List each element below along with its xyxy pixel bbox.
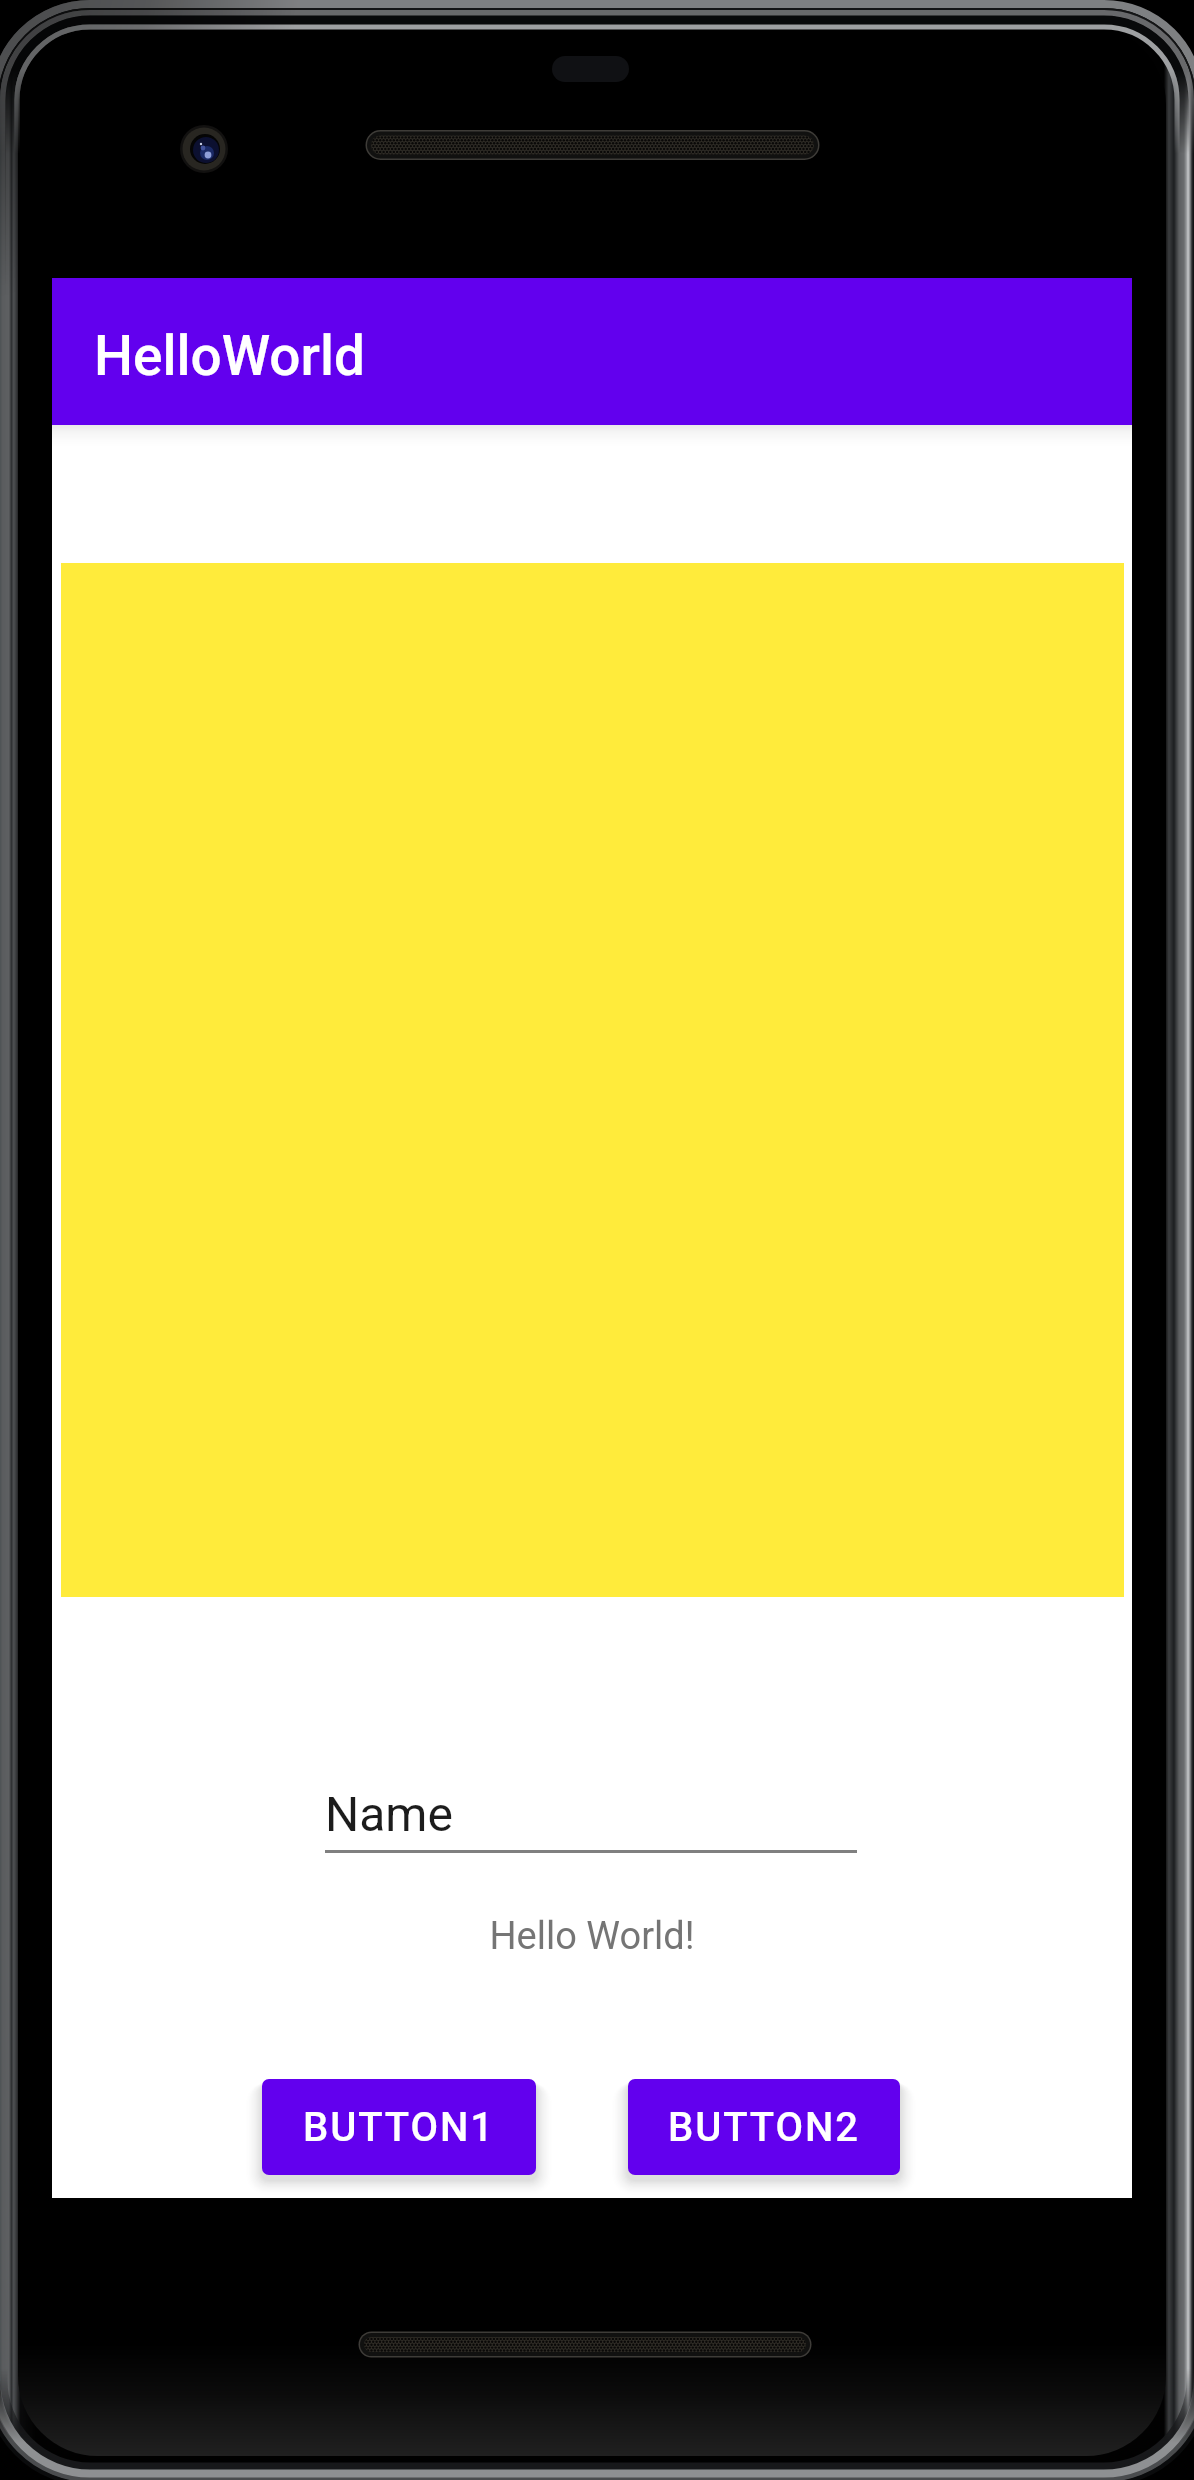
staticText: BUTTON2 <box>668 2104 860 2151</box>
staticText: Name <box>325 1786 453 1842</box>
staticText: HelloWorld <box>94 324 365 388</box>
staticText: BUTTON1 <box>303 2104 495 2151</box>
button[interactable]: BUTTON1 <box>262 2079 536 2175</box>
button[interactable]: BUTTON2 <box>628 2079 900 2175</box>
staticText: Hello World! <box>52 1914 1132 1959</box>
button[interactable]: Name <box>325 1774 857 1853</box>
